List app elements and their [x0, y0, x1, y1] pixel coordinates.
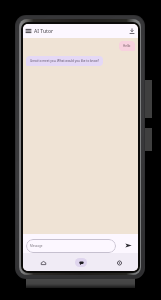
button[interactable]: Hello	[119, 41, 135, 51]
button[interactable]: Great to meet you. What would you like t…	[26, 56, 103, 66]
staticText: Hello	[123, 44, 131, 48]
button[interactable]: Settings	[100, 253, 138, 271]
button[interactable]: Open navigation menu	[23, 24, 34, 38]
button[interactable]: Send message	[121, 238, 135, 253]
button[interactable]: Chat	[62, 253, 100, 271]
button[interactable]: Message	[26, 239, 116, 253]
staticText: Great to meet you. What would you like t…	[30, 59, 99, 63]
button[interactable]: Home	[23, 253, 62, 271]
button[interactable]: Download conversation	[126, 24, 138, 38]
staticText: Message	[30, 244, 43, 248]
staticText: AI Tutor	[34, 28, 54, 35]
